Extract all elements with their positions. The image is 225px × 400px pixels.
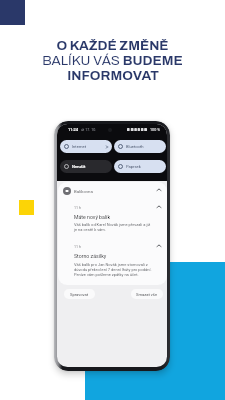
other: Status icons <box>127 127 149 132</box>
staticText: út 17. 10. <box>81 128 97 132</box>
staticText: Bluetooth <box>126 144 144 149</box>
staticText: Máte nový balík <box>74 214 111 220</box>
staticText: 11:24 <box>68 127 78 132</box>
staticText: 11 h <box>74 206 81 210</box>
button[interactable] <box>58 182 167 285</box>
other: Collapse <box>156 187 162 193</box>
staticText: O KAŽDÉ ZMĚNĚ <box>56 38 169 53</box>
staticText: Spravovat <box>70 292 89 297</box>
button[interactable]: Smazat vše <box>131 289 163 299</box>
other: Collapse <box>156 243 162 249</box>
staticText: Storno zásilky <box>74 253 107 259</box>
staticText: Balíkovna <box>74 189 93 194</box>
staticText: INFORMOVAT <box>67 68 159 83</box>
staticText: 11 h <box>74 245 81 249</box>
staticText: Internet <box>72 144 87 149</box>
staticText: Nerušit <box>72 164 86 169</box>
button[interactable]: Bluetooth <box>114 140 166 153</box>
staticText: Váš balík pro Jan Novák jsme stornovali … <box>74 262 156 277</box>
staticText: 100 % <box>150 128 160 132</box>
button[interactable]: Nerušit <box>60 160 112 173</box>
staticText: Paprsek <box>126 164 141 169</box>
staticText: Smazat vše <box>136 292 158 297</box>
button[interactable]: Internet <box>60 140 112 153</box>
button[interactable]: Spravovat <box>64 289 95 299</box>
staticText: BALÍKU VÁS BUDEME <box>42 53 183 68</box>
other: Collapse <box>156 204 162 210</box>
staticText: Váš balík od Karel Novák jsme převzali a… <box>74 222 153 232</box>
button[interactable]: Paprsek <box>114 160 166 173</box>
